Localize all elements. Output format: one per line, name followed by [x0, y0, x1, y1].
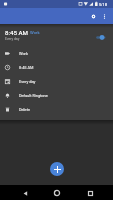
- button[interactable]: Delete: [0, 102, 113, 116]
- button[interactable]: Settings: [87, 10, 99, 22]
- staticText: Every day: [19, 79, 36, 84]
- staticText: Default Ringtone: [19, 93, 48, 98]
- button[interactable]: Alarm on: [94, 33, 108, 42]
- button[interactable]: Home: [50, 186, 64, 200]
- button[interactable]: Add alarm: [50, 162, 64, 176]
- staticText: Delete: [19, 107, 30, 112]
- button[interactable]: Back: [18, 186, 32, 200]
- staticText: 5:18: [99, 2, 108, 7]
- staticText: Work: [19, 51, 28, 56]
- button[interactable]: Recent apps: [83, 186, 97, 200]
- button[interactable]: More options: [98, 10, 110, 22]
- staticText: Every day: [5, 37, 20, 41]
- staticText: 8:45 AM: [5, 29, 28, 36]
- button[interactable]: Work: [0, 46, 113, 60]
- button[interactable]: Every day: [0, 74, 113, 88]
- button[interactable]: Default Ringtone: [0, 88, 113, 102]
- staticText: 8:45 AM: [19, 65, 34, 70]
- staticText: Work: [30, 30, 40, 35]
- button[interactable]: 8:45 AM: [0, 60, 113, 74]
